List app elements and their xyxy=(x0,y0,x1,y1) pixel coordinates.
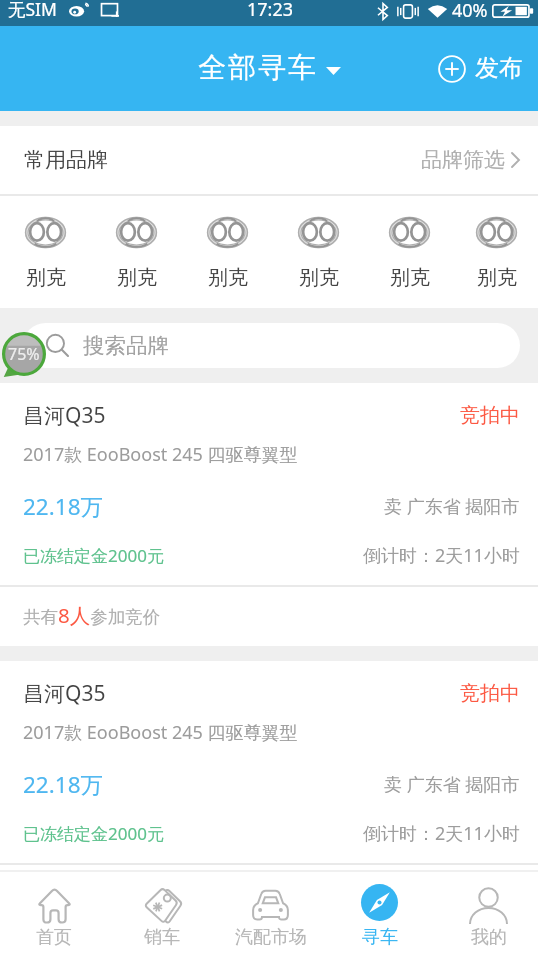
staticText: 别克 xyxy=(117,265,157,290)
staticText: 我的 xyxy=(471,926,507,949)
other: 发布 xyxy=(438,55,466,83)
staticText: 共有8人参加竞价 xyxy=(23,601,161,629)
staticText: 倒计时：2天11小时 xyxy=(363,821,520,846)
button[interactable]: 品牌筛选 xyxy=(421,126,520,194)
staticText: 2017款 EooBoost 245 四驱尊翼型 xyxy=(23,442,298,467)
staticText: 别克 xyxy=(477,265,517,290)
staticText: 40% xyxy=(452,0,488,17)
button[interactable]: 销车 xyxy=(108,872,216,958)
other: 首页 xyxy=(36,887,73,924)
staticText: 品牌筛选 xyxy=(421,147,505,173)
staticText: 汽配市场 xyxy=(235,926,307,949)
button[interactable]: 发布 xyxy=(438,53,523,83)
button[interactable]: 搜索品牌 xyxy=(23,323,520,368)
staticText: 22.18万 xyxy=(23,769,104,800)
button[interactable]: 别克 xyxy=(364,196,455,308)
staticText: 首页 xyxy=(36,926,72,949)
button[interactable]: 我的 xyxy=(434,872,538,958)
staticText: 昌河Q35 xyxy=(23,401,106,430)
staticText: 22.18万 xyxy=(23,491,104,522)
staticText: 竞拍中 xyxy=(460,681,520,706)
button[interactable]: 别克 xyxy=(273,196,364,308)
button[interactable]: 昌河Q35 xyxy=(0,661,538,924)
button[interactable]: 全部寻车 xyxy=(197,50,341,85)
staticText: 卖 广东省 揭阳市 xyxy=(384,772,520,797)
other: 我的 xyxy=(470,887,507,924)
staticText: 2017款 EooBoost 245 四驱尊翼型 xyxy=(23,720,298,745)
staticText: 共有8人参加竞价 xyxy=(23,879,161,907)
other: 销车 xyxy=(144,887,181,924)
staticText: 搜索品牌 xyxy=(83,332,169,359)
button[interactable]: 汽配市场 xyxy=(216,872,325,958)
staticText: 发布 xyxy=(475,53,523,83)
staticText: 昌河Q35 xyxy=(23,679,106,708)
staticText: 卖 广东省 揭阳市 xyxy=(384,494,520,519)
staticText: 17:23 xyxy=(247,0,294,17)
button[interactable]: 首页 xyxy=(0,872,108,958)
staticText: 销车 xyxy=(144,926,180,949)
button[interactable]: 寻车 xyxy=(325,872,434,958)
button[interactable]: 别克 xyxy=(182,196,273,308)
staticText: 已冻结定金2000元 xyxy=(23,544,164,567)
button[interactable]: 别克 xyxy=(91,196,182,308)
other: 寻车 xyxy=(361,884,398,921)
staticText: 寻车 xyxy=(362,926,398,949)
other: 汽配市场 xyxy=(252,887,289,924)
staticText: 倒计时：2天11小时 xyxy=(363,543,520,568)
staticText: 别克 xyxy=(299,265,339,290)
button[interactable]: 别克 xyxy=(455,196,538,308)
staticText: 常用品牌 xyxy=(24,147,108,173)
staticText: 别克 xyxy=(26,265,66,290)
staticText: 别克 xyxy=(208,265,248,290)
staticText: 全部寻车 xyxy=(197,50,317,85)
staticText: 竞拍中 xyxy=(460,403,520,428)
staticText: 无SIM xyxy=(8,0,57,18)
button[interactable]: 昌河Q35 xyxy=(0,383,538,646)
staticText: 75% xyxy=(8,343,40,365)
staticText: 已冻结定金2000元 xyxy=(23,822,164,845)
button[interactable]: 别克 xyxy=(0,196,91,308)
staticText: 别克 xyxy=(390,265,430,290)
